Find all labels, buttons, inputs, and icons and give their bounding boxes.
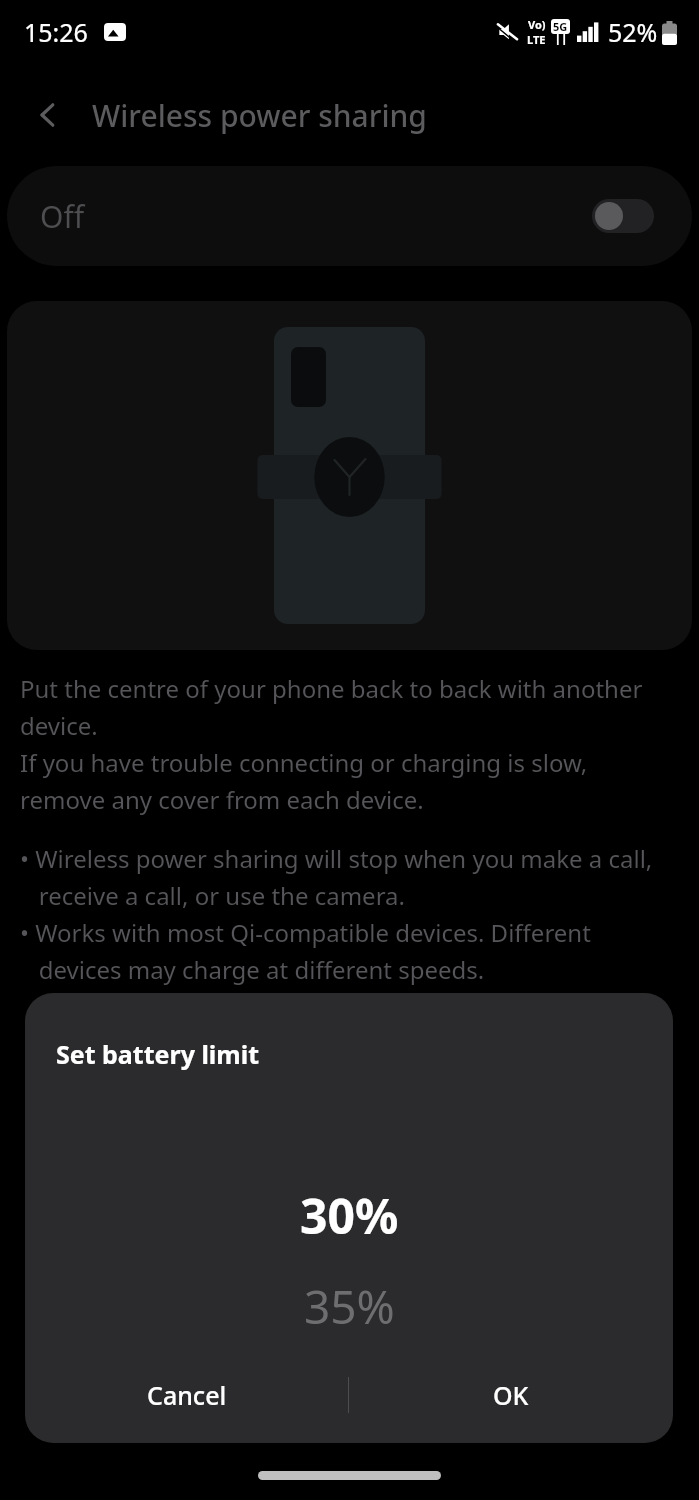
button[interactable]: Back (22, 89, 74, 141)
staticText: Wireless power sharing (92, 95, 427, 136)
button[interactable]: Cancel (25, 1347, 348, 1443)
button[interactable]: Off (7, 166, 692, 266)
staticText: OK (493, 1378, 529, 1412)
button[interactable]: OK (349, 1347, 673, 1443)
staticText: 30% (300, 1183, 399, 1248)
staticText: • Wireless power sharing will stop when … (20, 842, 653, 986)
staticText: 35% (304, 1275, 395, 1338)
staticText: Off (40, 196, 85, 237)
staticText: Put the centre of your phone back to bac… (20, 672, 643, 816)
staticText: 5G (553, 19, 568, 34)
staticText: 52% (608, 15, 658, 49)
staticText: LTE (527, 32, 546, 47)
staticText: 15:26 (24, 15, 88, 49)
staticText: Vo) (528, 17, 546, 32)
staticText: Set battery limit (56, 1037, 260, 1071)
staticText: Cancel (147, 1378, 227, 1412)
